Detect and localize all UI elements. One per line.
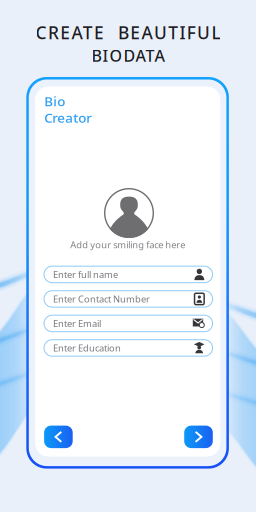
staticText: Bio <box>44 92 65 110</box>
staticText: Enter full name <box>53 268 118 281</box>
button[interactable]: Enter Email <box>44 315 213 332</box>
staticText: Creator <box>44 109 92 126</box>
staticText: BIODATA <box>91 45 164 66</box>
button[interactable]: Enter Education <box>44 340 213 356</box>
staticText: Enter Contact Number <box>53 293 150 305</box>
staticText: Enter Email <box>53 317 101 330</box>
staticText: Add your smiling face here <box>70 238 185 251</box>
button[interactable]: Enter Contact Number <box>44 291 213 307</box>
staticText: Enter Education <box>53 342 121 354</box>
button[interactable]: Enter full name <box>44 266 213 283</box>
staticText: CREATE BEAUTIFUL <box>36 21 220 44</box>
button[interactable]: Next <box>184 426 213 448</box>
button[interactable]: Previous <box>44 426 73 448</box>
